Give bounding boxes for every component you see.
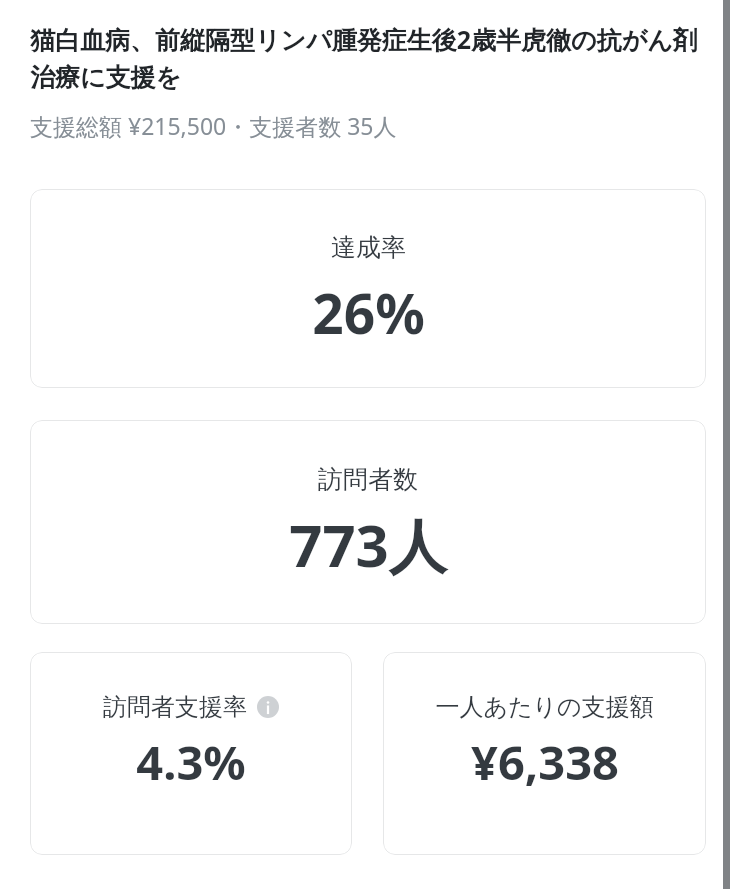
staticText: 支援総額 ¥215,500・支援者数 35人 bbox=[30, 110, 397, 141]
staticText: 達成率 bbox=[331, 232, 406, 263]
staticText: 猫白血病、前縦隔型リンパ腫発症生後2歳半虎徹の抗がん剤治療に支援を bbox=[30, 22, 706, 94]
staticText: 4.3% bbox=[136, 730, 246, 794]
button[interactable]: 詳細情報 bbox=[257, 696, 279, 718]
staticText: 773人 bbox=[289, 505, 447, 584]
staticText: ¥6,338 bbox=[471, 730, 619, 794]
button[interactable]: 一人あたりの支援額 bbox=[383, 652, 706, 855]
staticText: 一人あたりの支援額 bbox=[435, 692, 654, 722]
staticText: 訪問者数 bbox=[318, 464, 418, 495]
button[interactable]: 訪問者数 bbox=[30, 420, 706, 624]
button[interactable]: 達成率 bbox=[30, 189, 706, 388]
button[interactable]: 訪問者支援率 bbox=[30, 652, 352, 855]
staticText: 訪問者支援率 bbox=[103, 692, 247, 722]
staticText: 26% bbox=[312, 275, 425, 350]
